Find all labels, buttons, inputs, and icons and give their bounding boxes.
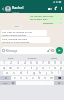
button[interactable]: v — [30, 76, 36, 80]
staticText: 4 — [24, 61, 26, 65]
button[interactable]: Message — [1, 47, 55, 54]
button[interactable]: . — [48, 81, 54, 85]
staticText: p — [60, 66, 62, 70]
staticText: 6 — [36, 61, 38, 65]
button[interactable]: 7 — [40, 61, 46, 65]
staticText: Can I get an update on the — [2, 30, 32, 33]
staticText: 5 — [30, 61, 32, 65]
button[interactable]: s — [10, 71, 17, 75]
button[interactable]: 5 — [28, 61, 34, 65]
staticText: ?123 — [3, 82, 8, 85]
button[interactable]: x — [18, 76, 24, 80]
button[interactable]: Enter — [54, 81, 64, 85]
button[interactable]: b — [36, 76, 42, 80]
staticText: 7 — [42, 61, 44, 65]
staticText: c — [26, 76, 28, 80]
button[interactable]: Sure, sending the final — [1, 37, 50, 43]
button[interactable]: Can I get an update on the — [1, 30, 47, 36]
staticText: b — [38, 76, 40, 80]
button[interactable]: h — [37, 71, 43, 75]
button[interactable]: n — [42, 76, 48, 80]
button[interactable]: o — [52, 66, 58, 70]
button[interactable]: y — [34, 66, 40, 70]
staticText: Message — [6, 49, 18, 53]
button[interactable]: Call — [53, 4, 59, 13]
staticText: online — [12, 10, 19, 13]
button[interactable]: g — [31, 71, 37, 75]
staticText: f — [27, 71, 28, 75]
staticText: a — [6, 71, 8, 75]
button[interactable]: k — [49, 71, 55, 75]
staticText: w — [9, 66, 12, 70]
button[interactable]: c — [24, 76, 30, 80]
staticText: . — [51, 81, 52, 85]
staticText: 0 — [60, 61, 62, 65]
button[interactable]: r — [21, 66, 28, 70]
staticText: TODAY — [14, 25, 20, 28]
button[interactable]: 0 — [58, 61, 64, 65]
staticText: n — [44, 76, 46, 80]
staticText: y — [36, 66, 38, 70]
staticText: 9 — [54, 61, 56, 65]
staticText: e — [17, 66, 19, 70]
button[interactable]: More options — [59, 4, 64, 13]
button[interactable]: e — [14, 66, 21, 70]
button[interactable]: j — [43, 71, 49, 75]
button[interactable]: Send — [56, 47, 63, 54]
button[interactable]: Back — [0, 4, 5, 13]
staticText: 8 — [48, 61, 50, 65]
button[interactable]: Backspace — [54, 76, 64, 80]
button[interactable]: Emoji — [10, 81, 16, 85]
staticText: 2 — [10, 61, 12, 65]
button[interactable]: f — [24, 71, 31, 75]
staticText: l — [58, 71, 59, 75]
button[interactable]: w — [7, 66, 14, 70]
button[interactable]: Thanks — [22, 55, 43, 60]
staticText: Sure, sending the final — [2, 37, 28, 40]
staticText: g — [33, 71, 35, 75]
staticText: 3 — [17, 61, 19, 65]
staticText: x — [20, 76, 22, 80]
staticText: Sure — [8, 56, 14, 59]
button[interactable]: ?123 — [0, 81, 10, 85]
staticText: h — [39, 71, 41, 75]
button[interactable]: 9 — [52, 61, 58, 65]
button[interactable]: l — [55, 71, 61, 75]
staticText: o — [54, 66, 56, 70]
button[interactable]: p — [58, 66, 64, 70]
staticText: version in a few minutes — [2, 40, 30, 43]
button[interactable]: q — [0, 66, 7, 70]
staticText: i — [49, 66, 50, 70]
button[interactable]: 4 — [21, 61, 28, 65]
button[interactable]: 6 — [34, 61, 40, 65]
staticText: Hi! I've just sent over — [30, 14, 54, 17]
button[interactable]: 2 — [7, 61, 14, 65]
button[interactable]: Shift — [0, 76, 11, 80]
staticText: j — [46, 71, 47, 75]
button[interactable]: Received — [42, 21, 63, 24]
staticText: the project files — [30, 17, 48, 20]
staticText: Received — [43, 21, 53, 24]
staticText: s — [13, 71, 15, 75]
button[interactable]: TODAY — [12, 25, 22, 28]
staticText: Thanks — [28, 56, 37, 59]
button[interactable]: a — [3, 71, 10, 75]
button[interactable]: m — [48, 76, 54, 80]
staticText: k — [51, 71, 53, 75]
button[interactable]: t — [28, 66, 34, 70]
button[interactable]: Sure — [0, 55, 22, 60]
button[interactable]: 3 — [14, 61, 21, 65]
button[interactable]: u — [40, 66, 46, 70]
button[interactable]: i — [46, 66, 52, 70]
button[interactable]: 1 — [0, 61, 7, 65]
button[interactable]: Okay — [43, 55, 64, 60]
staticText: Okay — [51, 56, 57, 59]
button[interactable]: 8 — [46, 61, 52, 65]
button[interactable]: Hi! I've just sent over — [29, 14, 63, 20]
button[interactable]: z — [11, 76, 18, 80]
button[interactable]: Video call — [47, 4, 53, 13]
staticText: q — [3, 66, 5, 70]
staticText: u — [42, 66, 44, 70]
button[interactable]: d — [17, 71, 24, 75]
